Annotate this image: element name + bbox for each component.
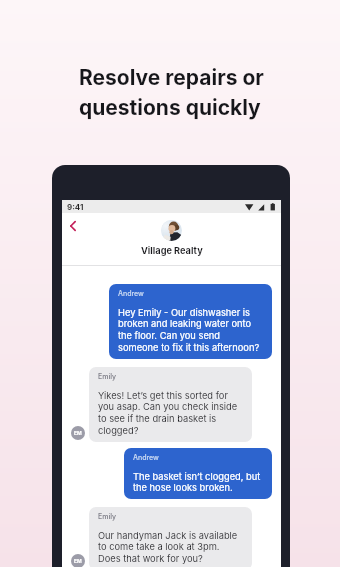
staticText: Hey Emily - Our dishwasher is broken and… <box>118 307 260 354</box>
button[interactable]: Emily <box>89 507 252 567</box>
button[interactable]: Andrew <box>124 448 272 499</box>
staticText: 9:41 <box>67 202 84 212</box>
staticText: Emily <box>98 512 117 520</box>
staticText: Resolve repairs or questions quickly <box>79 65 264 120</box>
button[interactable]: Andrew <box>109 284 272 359</box>
staticText: Village Realty <box>141 245 203 256</box>
button[interactable]: Emily <box>89 367 252 442</box>
staticText: EM <box>74 558 82 564</box>
staticText: EM <box>74 430 82 436</box>
staticText: Andrew <box>133 453 159 461</box>
staticText: Andrew <box>118 289 144 297</box>
button[interactable]: Back <box>64 217 82 235</box>
staticText: Emily <box>98 372 117 380</box>
staticText: Yikes! Let’s get this sorted for you asa… <box>98 390 238 437</box>
staticText: Our handyman Jack is available to come t… <box>98 530 238 565</box>
staticText: The basket isn’t clogged, but the hose l… <box>133 471 261 494</box>
